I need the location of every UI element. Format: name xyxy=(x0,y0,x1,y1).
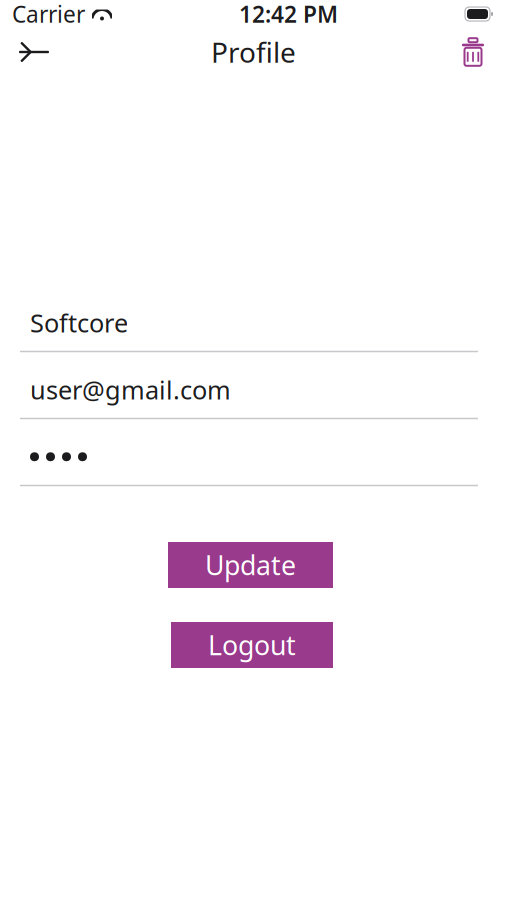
staticText: Logout xyxy=(208,627,296,663)
staticText: Carrier xyxy=(12,0,85,29)
staticText: user@gmail.com xyxy=(30,373,231,406)
staticText: 12:42 PM xyxy=(239,0,338,29)
staticText: Update xyxy=(205,547,296,583)
button[interactable]: Logout xyxy=(171,622,333,668)
staticText: Softcore xyxy=(30,306,128,339)
staticText: Profile xyxy=(211,33,296,71)
button[interactable]: Back xyxy=(6,30,62,74)
button[interactable]: Delete xyxy=(445,30,501,74)
button[interactable]: Update xyxy=(168,542,333,588)
